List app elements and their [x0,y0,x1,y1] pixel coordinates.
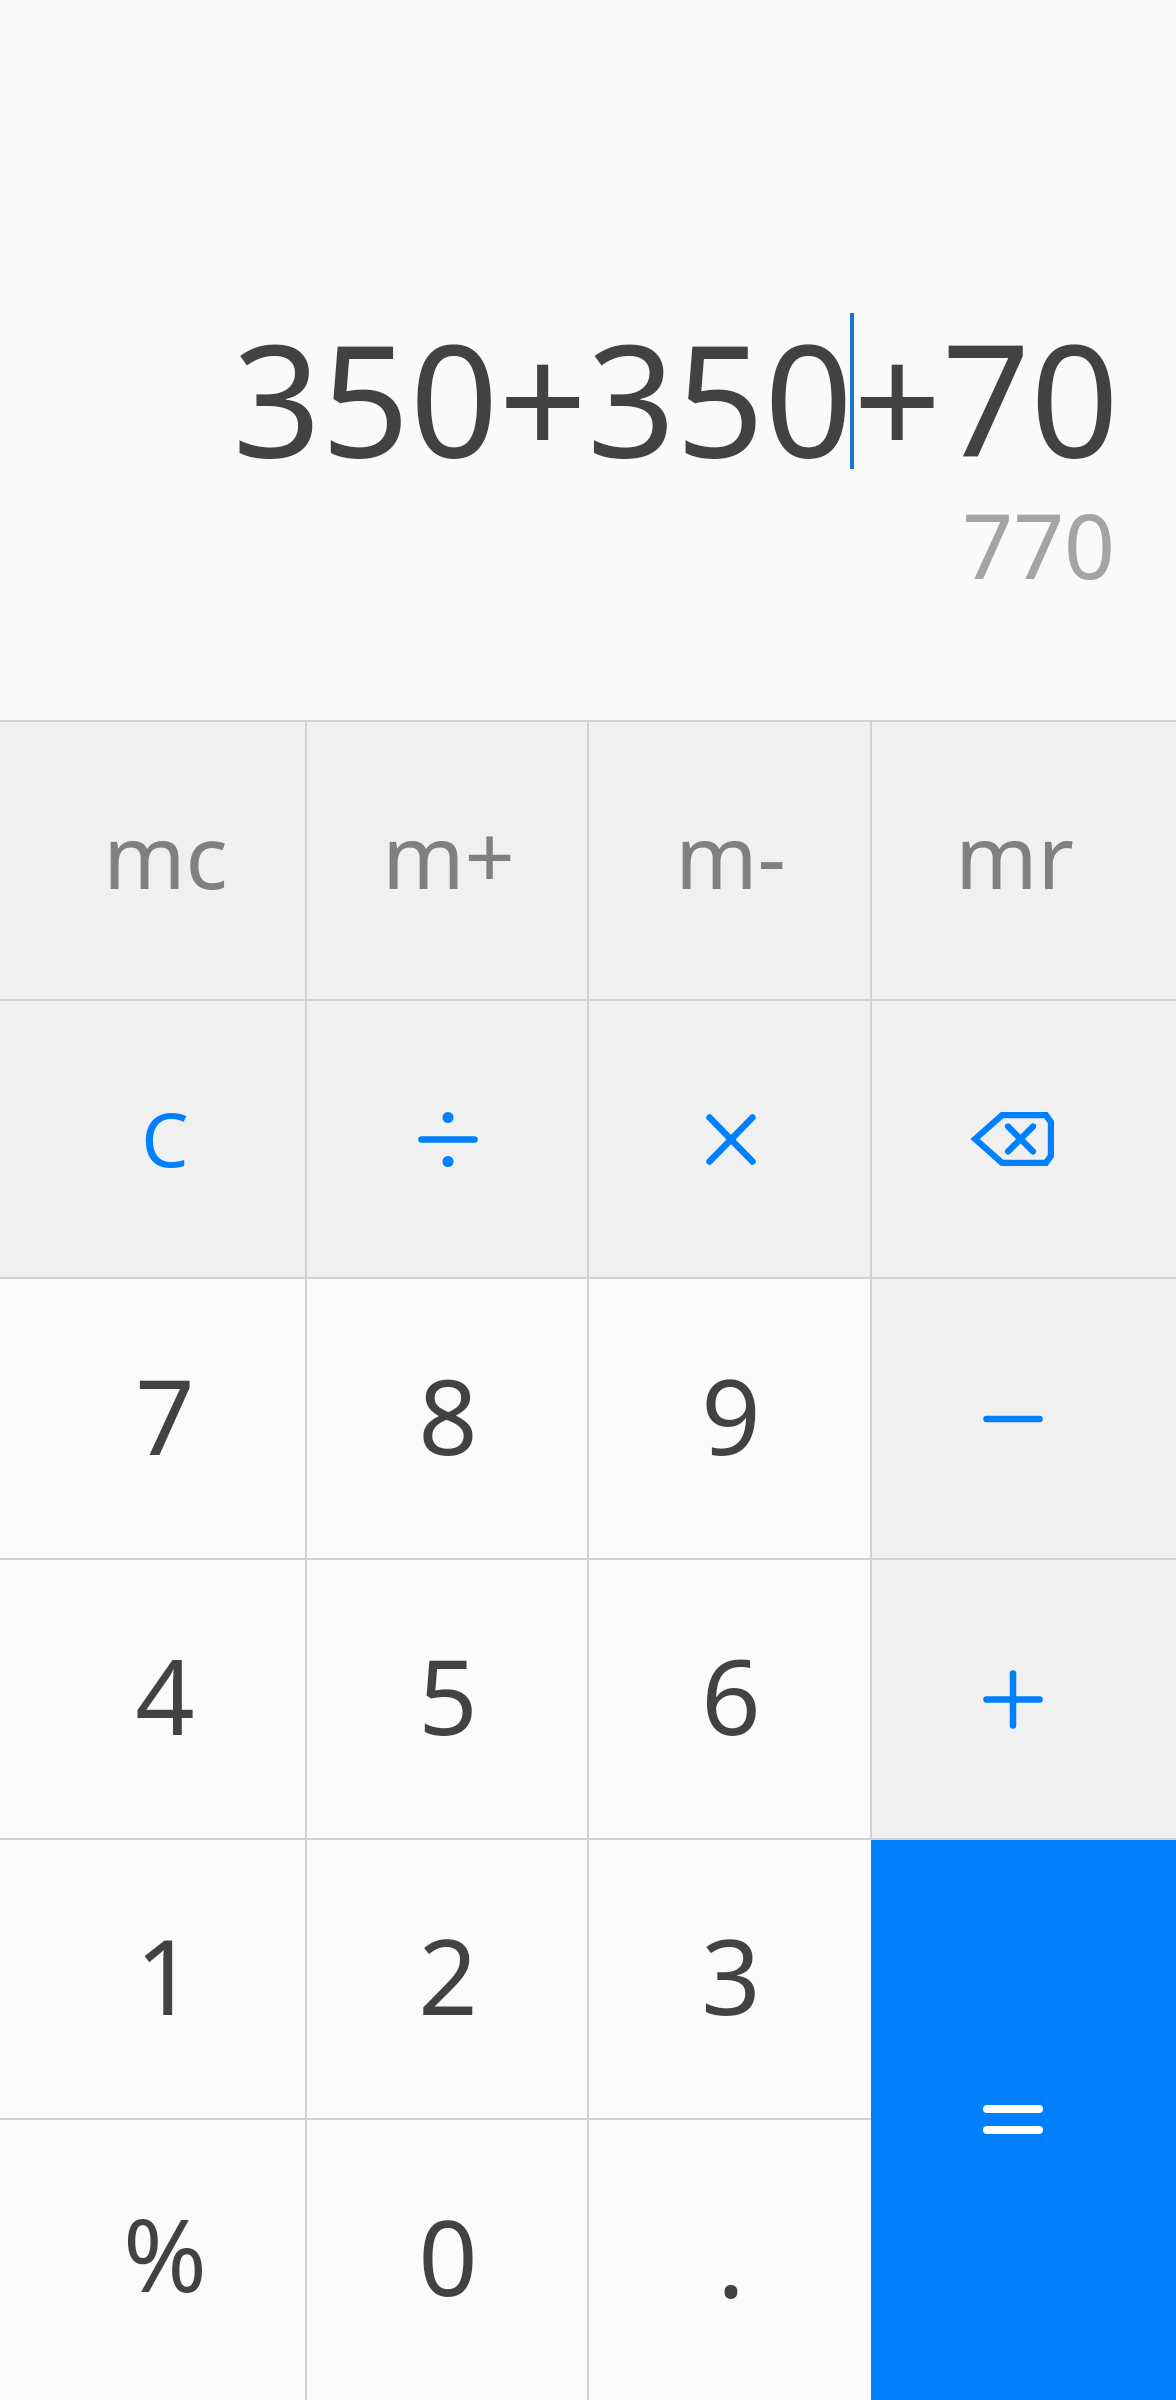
button[interactable]: 4 [0,1559,306,1839]
button[interactable]: 9 [588,1278,871,1559]
staticText: 9 [701,1344,761,1486]
staticText: C [141,1087,189,1189]
button[interactable]: 2 [306,1839,588,2119]
button[interactable]: 8 [306,1278,588,1559]
staticText: 1 [135,1904,195,2046]
staticText: 4 [135,1624,195,1766]
button[interactable]: mc [0,720,306,1000]
staticText: m+ [382,795,515,915]
staticText: 6 [701,1624,761,1766]
button[interactable]: Clear [0,1000,306,1278]
button[interactable]: . [588,2119,871,2400]
button[interactable]: 3 [588,1839,871,2119]
button[interactable]: 0 [306,2119,588,2400]
staticText: 770 [962,484,1115,605]
staticText: 0 [418,2185,478,2327]
staticText: mc [103,795,228,915]
staticText: 7 [135,1344,195,1486]
staticText: 5 [418,1624,478,1766]
staticText: % [123,2184,207,2322]
button[interactable]: Divide [306,1000,588,1278]
button[interactable]: Minus [871,1278,1176,1559]
button[interactable]: 5 [306,1559,588,1839]
staticText: 3 [701,1904,761,2046]
button[interactable]: % [0,2119,306,2400]
button[interactable]: Plus [871,1559,1176,1839]
staticText: mr [955,795,1074,915]
button[interactable]: mr [871,720,1176,1000]
staticText: 2 [418,1904,478,2046]
button[interactable]: m+ [306,720,588,1000]
button[interactable]: m- [588,720,871,1000]
staticText: 8 [418,1344,478,1486]
button[interactable]: 6 [588,1559,871,1839]
staticText: 350+350+70 [232,291,1119,502]
button[interactable]: Equals [871,1839,1176,2400]
button[interactable]: 1 [0,1839,306,2119]
staticText: . [717,2187,745,2329]
button[interactable]: Backspace [871,1000,1176,1278]
staticText: m- [675,795,786,915]
button[interactable]: 7 [0,1278,306,1559]
button[interactable]: Multiply [588,1000,871,1278]
